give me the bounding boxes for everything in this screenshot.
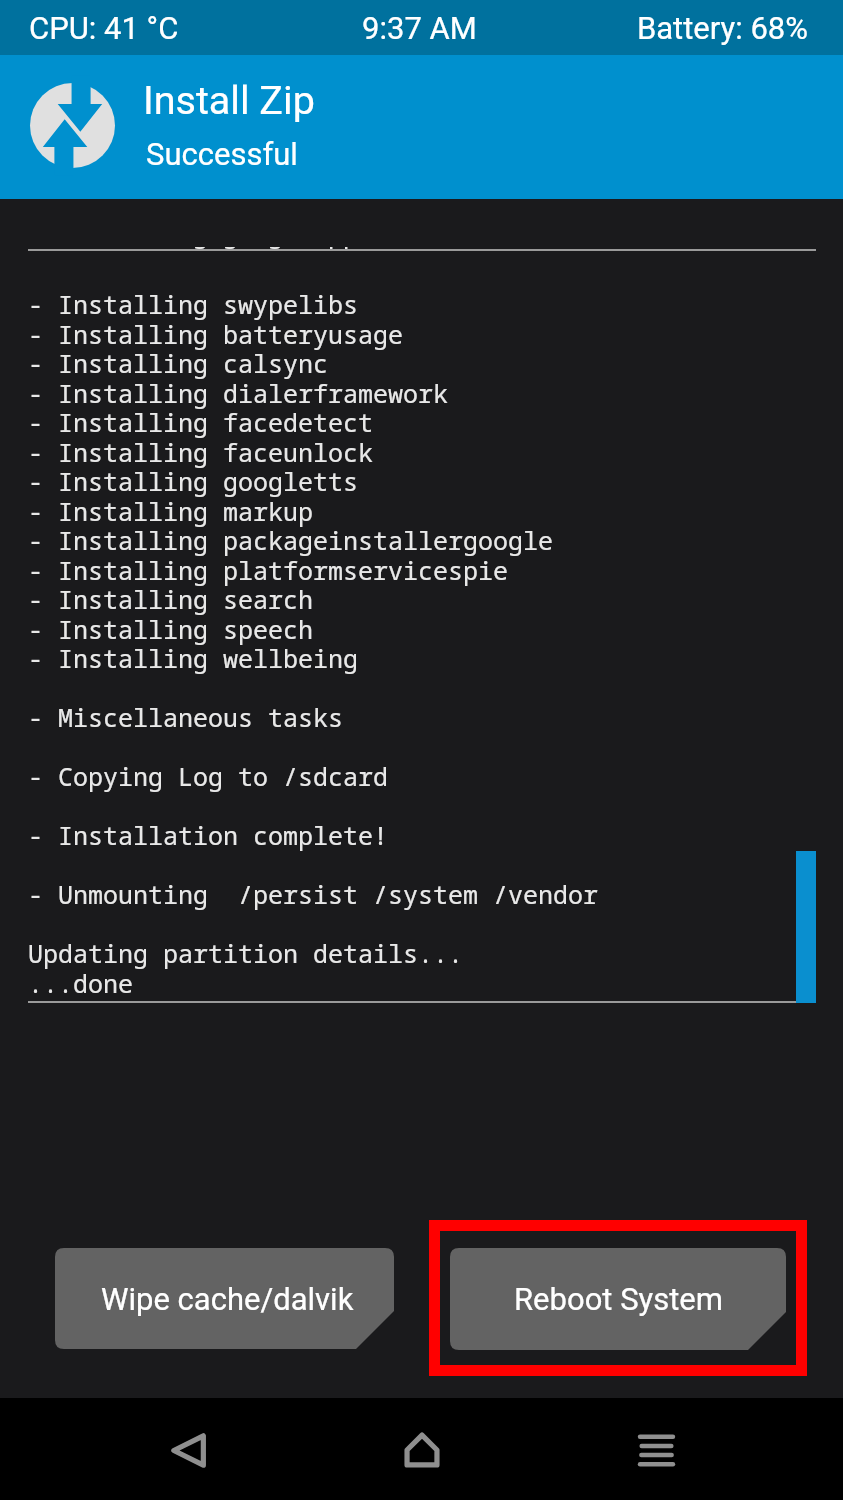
button[interactable]: Wipe cache/dalvik: [55, 1248, 394, 1349]
staticText: - Installing platformservicespie: [28, 553, 509, 587]
staticText: CPU: 41 °C: [29, 10, 281, 46]
staticText: - Installing packageinstallergoogle: [28, 523, 554, 557]
staticText: - Installing speech: [28, 612, 314, 646]
staticText: - Unmounting /persist /system /vendor: [28, 877, 599, 911]
staticText: - Copying Log to /sdcard: [28, 759, 389, 793]
staticText: - Installing googleapps: [28, 216, 374, 250]
staticText: - Installing swypelibs: [28, 287, 359, 321]
staticText: 9:37 AM: [279, 10, 560, 46]
staticText: - Installation complete!: [28, 818, 389, 852]
staticText: - Installing faceunlock: [28, 435, 374, 469]
button[interactable]: Back: [143, 1405, 233, 1495]
staticText: Reboot System: [514, 1281, 723, 1317]
staticText: - Installing batteryusage: [28, 317, 404, 351]
staticText: Updating partition details...: [28, 936, 464, 970]
staticText: Wipe cache/dalvik: [101, 1281, 354, 1317]
staticText: - Installing dialerframework: [28, 376, 449, 410]
staticText: ...done: [28, 966, 134, 1000]
button[interactable]: Recent apps: [611, 1405, 701, 1495]
staticText: - Installing facedetect: [28, 405, 374, 439]
button[interactable]: Reboot System: [450, 1248, 786, 1350]
staticText: Install Zip: [143, 77, 315, 123]
staticText: Successful: [146, 136, 298, 172]
staticText: - Installing calsync: [28, 346, 329, 380]
button[interactable]: Home: [377, 1405, 467, 1495]
staticText: - Miscellaneous tasks: [28, 700, 344, 734]
staticText: - Installing googletts: [28, 464, 359, 498]
staticText: - Installing wellbeing: [28, 641, 359, 675]
staticText: Battery: 68%: [562, 10, 808, 46]
staticText: - Installing search: [28, 582, 314, 616]
staticText: - Installing markup: [28, 494, 314, 528]
